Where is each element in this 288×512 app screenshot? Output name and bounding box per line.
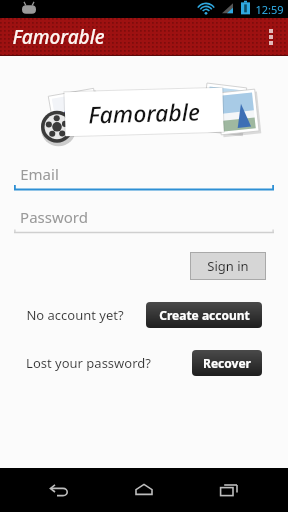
staticText: Famorable	[12, 24, 105, 50]
staticText: No account yet?	[26, 306, 124, 324]
button[interactable]: Password	[14, 207, 274, 236]
button[interactable]: Sign in	[190, 252, 266, 280]
staticText: Recover	[203, 355, 251, 371]
button[interactable]: Recent apps	[203, 470, 255, 510]
staticText: Lost your password?	[26, 354, 151, 372]
button[interactable]: More options	[254, 18, 288, 56]
button[interactable]: Create account	[146, 302, 262, 328]
staticText: Create account	[159, 307, 250, 323]
staticText: Famorable	[88, 95, 200, 129]
button[interactable]: Email	[14, 164, 274, 193]
button[interactable]: Recover	[192, 350, 262, 376]
staticText: Email	[20, 164, 59, 184]
staticText: 12:59	[255, 2, 284, 17]
staticText: Sign in	[207, 257, 249, 275]
button[interactable]: Back	[33, 470, 85, 510]
staticText: Password	[20, 207, 88, 227]
button[interactable]: Home	[118, 470, 170, 510]
